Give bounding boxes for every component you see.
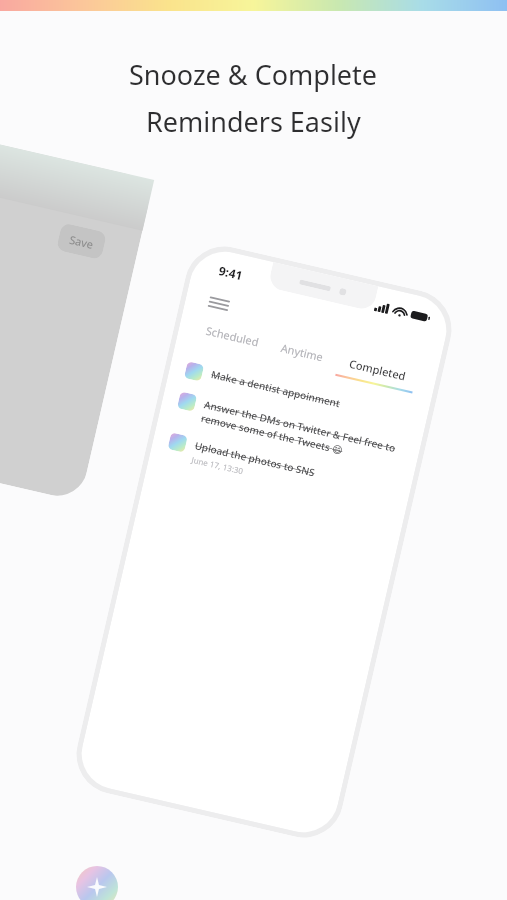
staticText: Upload the photos to SNS: [193, 438, 316, 479]
button[interactable]: Save: [56, 222, 107, 260]
button[interactable]: Anytime: [264, 337, 338, 373]
button[interactable]: Make a dentist appoinment: [167, 351, 429, 440]
staticText: June 17, 13:30: [191, 454, 245, 476]
staticText: Reminders Easily: [146, 103, 361, 140]
staticText: 9:41: [217, 262, 244, 283]
button[interactable]: Completed: [333, 353, 419, 394]
staticText: Answer the DMs on Twitter & Feel free to…: [200, 397, 397, 469]
button[interactable]: Upload the photos to SNS: [148, 422, 413, 521]
staticText: Anytime: [279, 340, 325, 364]
staticText: Scheduled: [204, 323, 260, 350]
staticText: Completed: [348, 356, 408, 383]
button[interactable]: Answer the DMs on Twitter & Feel free to…: [157, 381, 422, 481]
button[interactable]: Add reminder: [76, 866, 118, 900]
button[interactable]: Menu: [207, 291, 234, 317]
staticText: Snooze & Complete: [129, 56, 378, 93]
staticText: Save: [68, 232, 96, 252]
staticText: Make a dentist appoinment: [210, 367, 342, 410]
button[interactable]: Scheduled: [194, 321, 268, 357]
